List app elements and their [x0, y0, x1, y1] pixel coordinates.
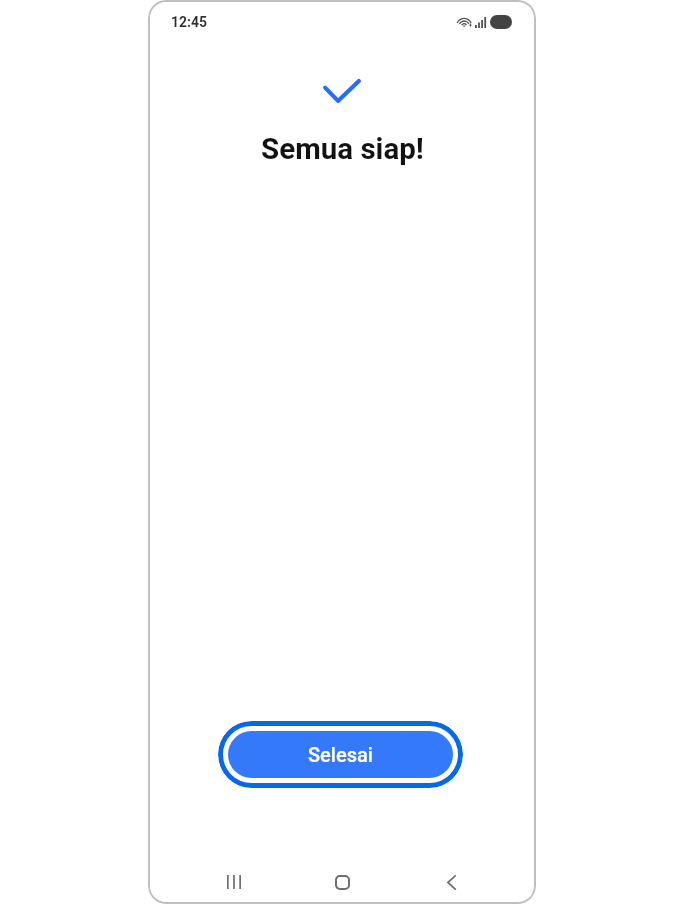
staticText: Selesai [308, 743, 373, 766]
button[interactable]: Home [288, 863, 397, 901]
staticText: 12:45 [171, 14, 208, 30]
staticText: Semua siap! [261, 132, 424, 167]
button[interactable]: Selesai [218, 721, 463, 788]
button[interactable]: Back [397, 863, 506, 901]
button[interactable]: Recents [179, 863, 288, 901]
